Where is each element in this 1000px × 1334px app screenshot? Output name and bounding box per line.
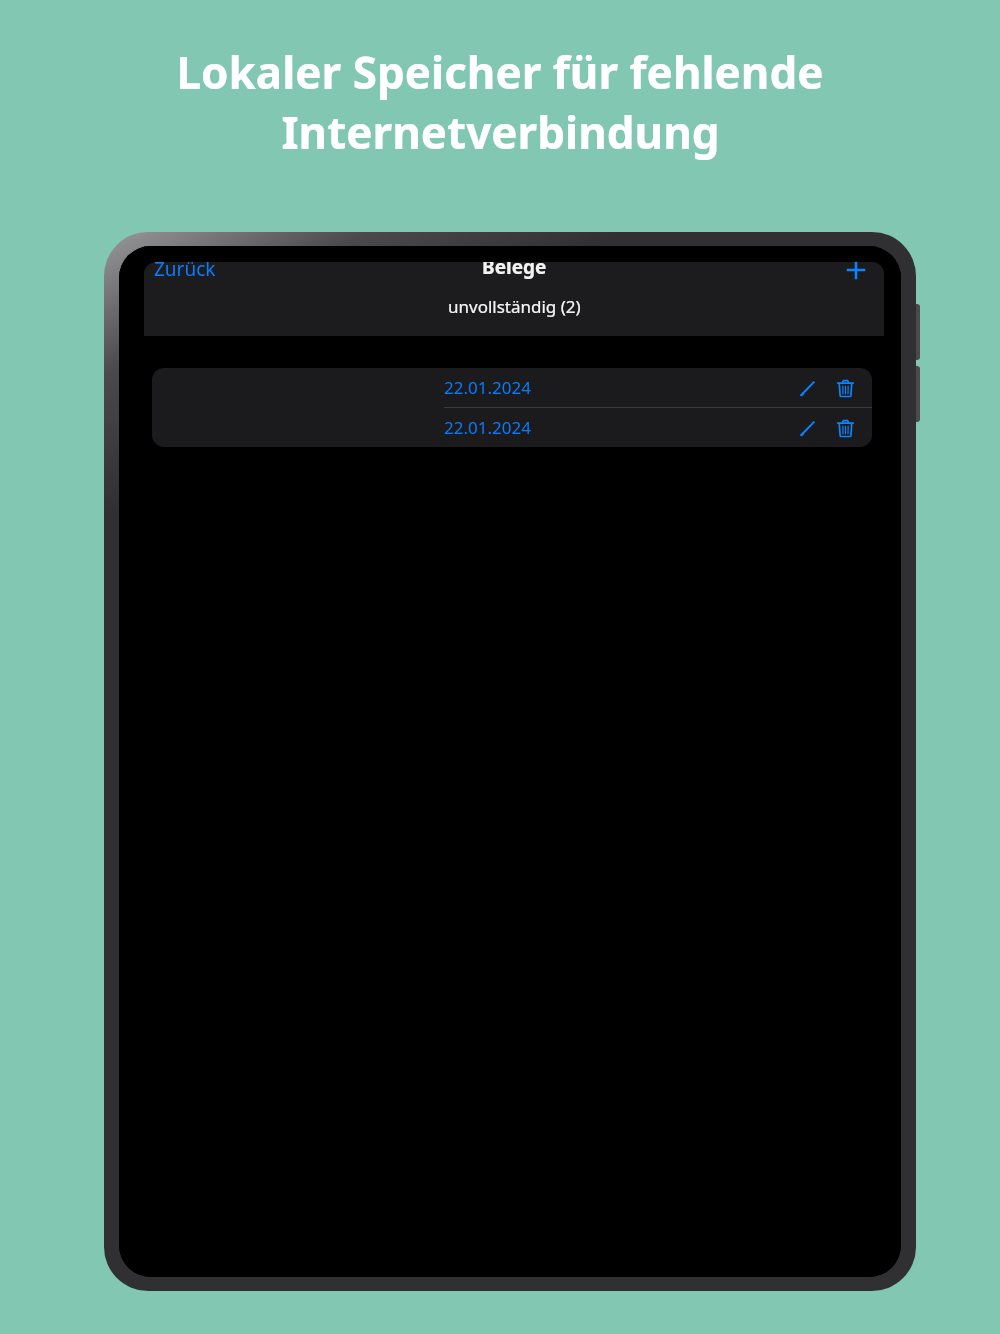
staticText: Zurück bbox=[154, 262, 216, 282]
button[interactable]: Löschen bbox=[828, 411, 862, 445]
button[interactable]: Bearbeiten bbox=[790, 411, 824, 445]
staticText: 22.01.2024 bbox=[444, 416, 531, 439]
button[interactable]: Bearbeiten bbox=[790, 371, 824, 405]
button[interactable]: 22.01.2024 bbox=[152, 368, 872, 407]
staticText: 22.01.2024 bbox=[444, 376, 531, 399]
button[interactable]: Zurück bbox=[148, 262, 298, 286]
staticText: Internetverbindung bbox=[281, 102, 720, 162]
staticText: Belege bbox=[482, 262, 547, 280]
button[interactable]: 22.01.2024 bbox=[152, 408, 872, 447]
button[interactable]: Hinzufügen bbox=[834, 262, 878, 292]
button[interactable]: Löschen bbox=[828, 371, 862, 405]
staticText: Lokaler Speicher für fehlende bbox=[176, 42, 824, 102]
staticText: unvollständig (2) bbox=[448, 295, 581, 318]
